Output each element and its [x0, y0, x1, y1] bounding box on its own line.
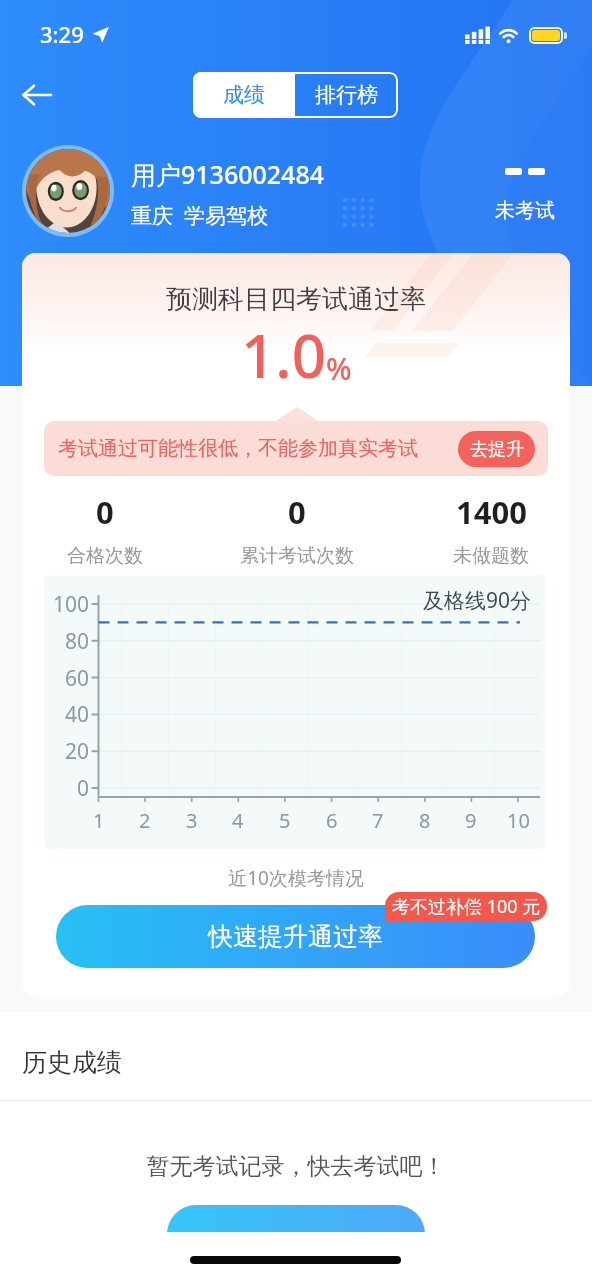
staticText: 及格线90分 [423, 586, 532, 615]
staticText: 9 [465, 807, 477, 834]
staticText: 去提升 [470, 438, 524, 461]
staticText: 未做题数 [453, 544, 529, 568]
staticText: 0 [288, 491, 306, 533]
button[interactable]: Back [14, 72, 60, 118]
staticText: 10 [507, 807, 530, 834]
staticText: 80 [65, 627, 90, 656]
staticText: 7 [372, 807, 384, 834]
staticText: 预测科目四考试通过率 [22, 283, 570, 316]
button[interactable]: 快速提升通过率 [56, 905, 535, 968]
staticText: 60 [65, 664, 90, 693]
staticText: 排行榜 [315, 82, 378, 108]
staticText: 累计考试次数 [240, 544, 354, 568]
button[interactable]: 成绩 [193, 72, 295, 118]
staticText: 0 [96, 491, 114, 533]
staticText: 合格次数 [67, 544, 143, 568]
staticText: 100 [53, 590, 90, 619]
staticText: 8 [419, 807, 431, 834]
staticText: 5 [279, 807, 291, 834]
staticText: 历史成绩 [22, 1047, 122, 1078]
button[interactable]: 排行榜 [295, 72, 398, 118]
staticText: 1400 [456, 491, 527, 533]
staticText: 考试通过可能性很低，不能参加真实考试 [58, 436, 418, 461]
button[interactable]: Avatar [26, 149, 110, 233]
staticText: 未考试 [495, 198, 555, 223]
staticText: 20 [65, 737, 90, 766]
staticText: 近10次模考情况 [22, 865, 570, 891]
button[interactable] [167, 1205, 425, 1232]
staticText: 用户9136002484 [131, 157, 325, 191]
staticText: 3:29 [40, 19, 84, 49]
staticText: 重庆 学易驾校 [131, 201, 268, 230]
staticText: 快速提升通过率 [208, 921, 383, 952]
staticText: 1.0 [241, 314, 326, 396]
staticText: 2 [139, 807, 151, 834]
staticText: 成绩 [223, 82, 265, 108]
staticText: 0 [77, 774, 90, 803]
staticText: 3 [186, 807, 198, 834]
staticText: 考不过补偿 100 元 [392, 894, 541, 919]
staticText: % [326, 348, 352, 389]
staticText: 1 [93, 807, 105, 834]
staticText: 40 [65, 700, 90, 729]
staticText: 暂无考试记录，快去考试吧！ [0, 1152, 592, 1181]
staticText: 4 [232, 807, 244, 834]
button[interactable]: 去提升 [458, 431, 535, 467]
staticText: 6 [326, 807, 338, 834]
